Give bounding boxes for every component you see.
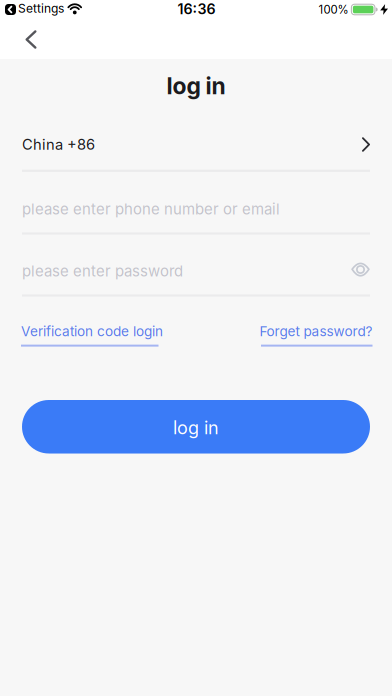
staticText: China +86: [22, 136, 95, 153]
staticText: please enter password: [22, 262, 183, 280]
staticText: Settings: [18, 1, 64, 15]
staticText: log in: [173, 417, 219, 438]
button[interactable]: Show password: [346, 256, 374, 282]
staticText: Verification code login: [21, 323, 163, 339]
button[interactable]: China +86: [0, 122, 392, 166]
staticText: Forget password?: [259, 323, 372, 339]
staticText: log in: [166, 72, 225, 99]
button[interactable]: Verification code login: [21, 323, 163, 347]
staticText: please enter phone number or email: [22, 200, 280, 218]
button[interactable]: Forget password?: [259, 323, 372, 347]
button[interactable]: log in: [22, 400, 370, 453]
button[interactable]: Back: [14, 22, 48, 56]
staticText: 16:36: [177, 1, 215, 17]
staticText: 100%: [318, 3, 348, 16]
